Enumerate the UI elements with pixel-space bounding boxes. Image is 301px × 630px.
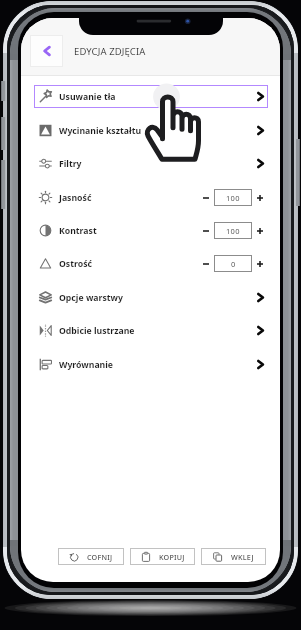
staticText: WKLEJ <box>231 552 254 562</box>
staticText: Wyrównanie <box>59 359 114 371</box>
staticText: 0 <box>231 259 236 269</box>
staticText: Usuwanie tła <box>59 91 116 103</box>
button[interactable]: WKLEJ <box>201 548 266 565</box>
button[interactable]: Usuwanie tła <box>34 85 268 108</box>
button[interactable]: Decrease <box>201 193 211 203</box>
button[interactable]: Wyrównanie <box>34 353 268 376</box>
button[interactable]: Increase <box>255 193 265 203</box>
button[interactable]: KOPIUJ <box>130 548 195 565</box>
staticText: Opcje warstwy <box>59 292 123 304</box>
button[interactable]: Increase <box>255 259 265 269</box>
button[interactable]: Odbicie lustrzane <box>34 319 268 342</box>
button[interactable]: Kontrast <box>34 219 268 242</box>
button[interactable]: COFNIJ <box>58 548 124 565</box>
staticText: KOPIUJ <box>159 552 185 562</box>
button[interactable]: Ostrość <box>34 252 268 275</box>
button[interactable]: Filtry <box>34 152 268 175</box>
staticText: COFNIJ <box>87 552 113 562</box>
button[interactable]: Wycinanie kształtu <box>34 119 268 142</box>
staticText: Kontrast <box>59 225 97 237</box>
button[interactable]: Opcje warstwy <box>34 286 268 309</box>
button[interactable]: Decrease <box>201 226 211 236</box>
button[interactable]: Increase <box>255 226 265 236</box>
button[interactable]: Back <box>30 35 63 67</box>
staticText: Filtry <box>59 158 82 170</box>
staticText: Jasność <box>59 192 92 204</box>
staticText: EDYCJA ZDJĘCIA <box>74 45 146 58</box>
button[interactable]: Jasność <box>34 186 268 209</box>
staticText: Wycinanie kształtu <box>59 125 142 137</box>
button[interactable]: Decrease <box>201 259 211 269</box>
staticText: Ostrość <box>59 258 92 270</box>
staticText: 100 <box>226 226 240 236</box>
staticText: Odbicie lustrzane <box>59 325 135 337</box>
staticText: 100 <box>226 193 240 203</box>
